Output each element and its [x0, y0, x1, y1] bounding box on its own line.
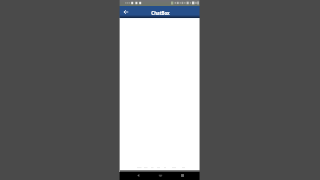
staticText: ChatBox	[151, 10, 170, 16]
button[interactable]: Back	[134, 171, 142, 179]
button[interactable]: Recent apps	[178, 171, 186, 179]
button[interactable]: Navigate up	[120, 6, 132, 18]
button[interactable]: Home	[156, 171, 164, 179]
